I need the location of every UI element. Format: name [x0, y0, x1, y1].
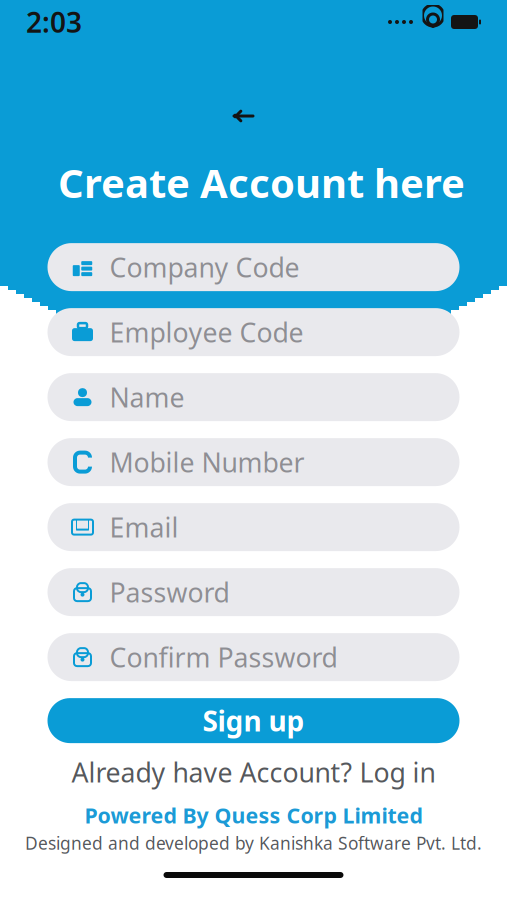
button[interactable]: Password [47, 568, 459, 616]
button[interactable]: Company Code [47, 243, 459, 291]
button[interactable]: Employee Code [47, 308, 459, 356]
staticText: Employee Code [109, 314, 303, 350]
staticText: Name [109, 379, 184, 415]
staticText: Company Code [109, 249, 299, 285]
button[interactable]: Name [47, 373, 459, 421]
button[interactable]: Already have Account? Log in [47, 753, 459, 791]
staticText: 2:03 [26, 3, 82, 41]
staticText: Email [109, 509, 178, 545]
staticText: Confirm Password [109, 639, 337, 675]
button[interactable]: Mobile Number [47, 438, 459, 486]
button[interactable]: Sign up [47, 698, 459, 743]
button[interactable]: Back [216, 92, 290, 140]
staticText: Powered By Quess Corp Limited [84, 801, 422, 829]
staticText: Create Account here [58, 156, 465, 209]
staticText: Password [109, 574, 229, 610]
staticText: Already have Account? Log in [71, 754, 435, 790]
button[interactable]: Confirm Password [47, 633, 459, 681]
staticText: Mobile Number [109, 444, 304, 480]
staticText: Sign up [202, 702, 304, 739]
staticText: Designed and developed by Kanishka Softw… [25, 831, 482, 854]
button[interactable]: Email [47, 503, 459, 551]
